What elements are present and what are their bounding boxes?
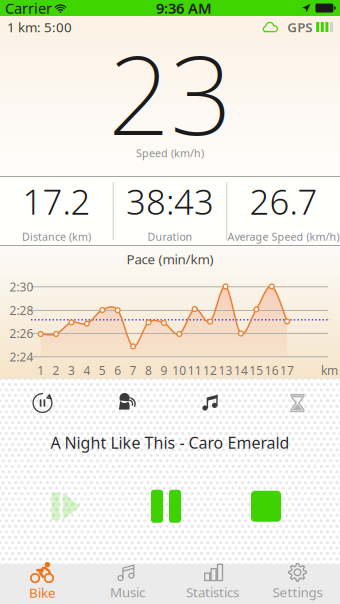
button[interactable]: Lap xyxy=(0,392,85,414)
button[interactable]: Auto pause xyxy=(255,393,340,413)
button[interactable]: Music xyxy=(85,564,170,604)
staticText: 2 xyxy=(53,362,60,378)
staticText: 2:26 xyxy=(9,325,33,341)
button[interactable]: Stop xyxy=(216,491,316,522)
staticText: 4 xyxy=(83,362,90,378)
staticText: 16 xyxy=(265,362,279,378)
staticText: A Night Like This - Caro Emerald xyxy=(50,432,289,453)
staticText: 2:30 xyxy=(9,279,33,295)
staticText: 10 xyxy=(172,362,186,378)
staticText: Carrier xyxy=(5,0,52,18)
staticText: 13 xyxy=(218,362,232,378)
staticText: 26.7 xyxy=(250,178,318,224)
staticText: 17.2 xyxy=(22,178,90,224)
staticText: GPS xyxy=(287,18,312,36)
staticText: Pace (min/km) xyxy=(126,250,213,268)
staticText: Bike xyxy=(29,584,56,601)
staticText: 8 xyxy=(145,362,152,378)
staticText: 23 xyxy=(108,20,232,165)
staticText: 11 xyxy=(188,362,202,378)
staticText: 9 xyxy=(160,362,167,378)
staticText: Settings xyxy=(272,583,322,601)
button[interactable]: Resume xyxy=(16,490,116,522)
staticText: 1 xyxy=(37,362,44,378)
staticText: 9:36 AM xyxy=(156,0,212,18)
button[interactable]: Statistics xyxy=(170,564,255,604)
staticText: 38:43 xyxy=(126,178,214,224)
button[interactable]: Settings xyxy=(255,564,340,604)
staticText: Music xyxy=(110,583,145,601)
staticText: 7 xyxy=(130,362,137,378)
staticText: 2:28 xyxy=(9,302,33,318)
button[interactable]: Bike xyxy=(0,564,85,604)
staticText: km xyxy=(321,362,338,378)
staticText: 3 xyxy=(68,362,75,378)
staticText: Statistics xyxy=(186,583,239,601)
staticText: Distance (km) xyxy=(22,229,91,244)
button[interactable]: Music xyxy=(170,392,255,414)
button[interactable]: Voice feedback xyxy=(85,392,170,414)
staticText: 5 xyxy=(99,362,106,378)
staticText: 14 xyxy=(234,362,248,378)
staticText: 12 xyxy=(203,362,217,378)
staticText: Speed (km/h) xyxy=(136,146,204,160)
button[interactable]: Pause xyxy=(116,490,216,523)
staticText: 1 km: 5:00 xyxy=(7,18,72,36)
staticText: 15 xyxy=(249,362,263,378)
staticText: Duration xyxy=(147,229,192,244)
staticText: 2:24 xyxy=(9,349,33,365)
staticText: 6 xyxy=(114,362,121,378)
staticText: 17 xyxy=(280,362,294,378)
staticText: Average Speed (km/h) xyxy=(228,229,340,244)
